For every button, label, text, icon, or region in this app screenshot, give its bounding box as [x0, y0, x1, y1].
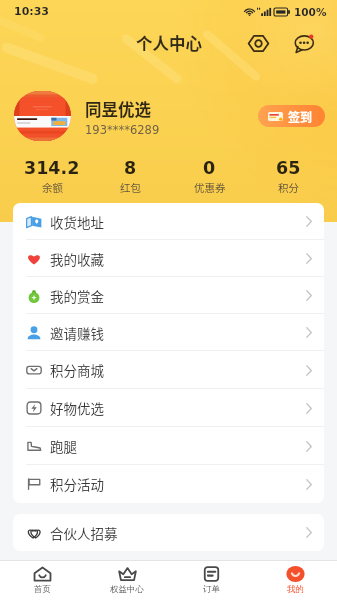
staticText: 订单	[203, 584, 220, 595]
button[interactable]: 合伙人招募	[13, 514, 324, 551]
staticText: 收货地址	[50, 212, 104, 232]
staticText: 65	[276, 158, 301, 178]
button[interactable]: 签到	[258, 105, 325, 127]
button[interactable]: 订单	[169, 561, 253, 600]
button[interactable]: 我的	[253, 561, 337, 600]
button[interactable]: 首页	[0, 561, 85, 600]
button[interactable]: 好物优选	[13, 389, 324, 427]
button[interactable]: 65	[249, 157, 328, 196]
staticText: 积分商城	[50, 360, 104, 380]
staticText: 积分活动	[50, 474, 104, 494]
staticText: 0	[203, 158, 216, 178]
button[interactable]: 积分商城	[13, 351, 324, 389]
staticText: 首页	[34, 584, 51, 595]
staticText: 红包	[120, 180, 141, 195]
staticText: 跑腿	[50, 436, 77, 456]
staticText: 优惠券	[194, 180, 226, 195]
button[interactable]: 我的收藏	[13, 240, 324, 277]
button[interactable]: Avatar	[14, 91, 71, 141]
staticText: 权益中心	[110, 584, 144, 595]
staticText: 签到	[288, 108, 313, 125]
staticText: 10:33	[14, 5, 50, 18]
button[interactable]: 0	[170, 157, 249, 196]
staticText: 8	[124, 158, 137, 178]
button[interactable]: Messages	[288, 27, 320, 59]
staticText: 314.2	[24, 158, 80, 178]
button[interactable]: 跑腿	[13, 427, 324, 465]
staticText: 我的	[287, 584, 304, 595]
staticText: 积分	[278, 180, 299, 195]
staticText: 个人中心	[136, 31, 202, 55]
staticText: 好物优选	[50, 398, 104, 418]
staticText: 我的收藏	[50, 249, 104, 269]
staticText: 同昱优选	[85, 97, 151, 121]
button[interactable]: 我的赏金	[13, 277, 324, 314]
button[interactable]: Settings	[242, 27, 274, 59]
staticText: 100%	[294, 6, 327, 18]
button[interactable]: 收货地址	[13, 203, 324, 240]
staticText: 余额	[42, 180, 63, 195]
staticText: 合伙人招募	[50, 523, 118, 543]
button[interactable]: 314.2	[13, 157, 91, 196]
button[interactable]: 8	[91, 157, 170, 196]
button[interactable]: 积分活动	[13, 465, 324, 503]
button[interactable]: 权益中心	[85, 561, 169, 600]
staticText: 193****6289	[85, 123, 160, 136]
staticText: 我的赏金	[50, 286, 104, 306]
button[interactable]: 邀请赚钱	[13, 314, 324, 351]
staticText: 邀请赚钱	[50, 323, 104, 343]
